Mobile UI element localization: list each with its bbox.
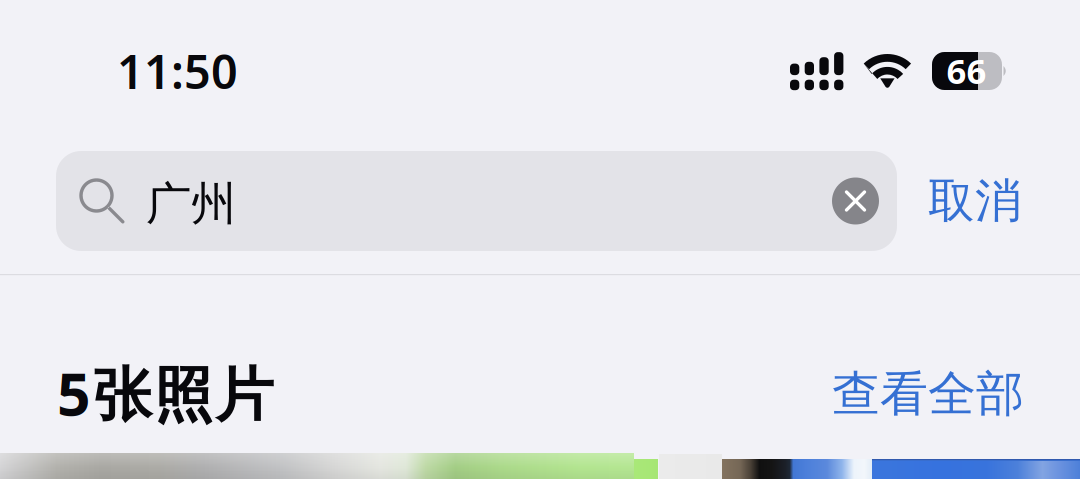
button[interactable]: 查看全部: [804, 354, 1024, 434]
button[interactable]: 取消: [915, 161, 1035, 241]
staticText: 5张照片: [57, 354, 274, 432]
staticText: 11:50: [117, 40, 238, 102]
button[interactable]: Photo 5: [872, 459, 1080, 479]
button[interactable]: Photo 1: [0, 453, 634, 479]
button[interactable]: Photo 4: [722, 459, 872, 479]
button[interactable]: Search field, 广州: [56, 151, 897, 251]
button[interactable]: Clear text: [832, 177, 879, 224]
staticText: 66: [946, 47, 986, 93]
staticText: 取消: [928, 172, 1022, 230]
staticText: 查看全部: [832, 364, 1024, 423]
staticText: 广州: [146, 176, 236, 232]
